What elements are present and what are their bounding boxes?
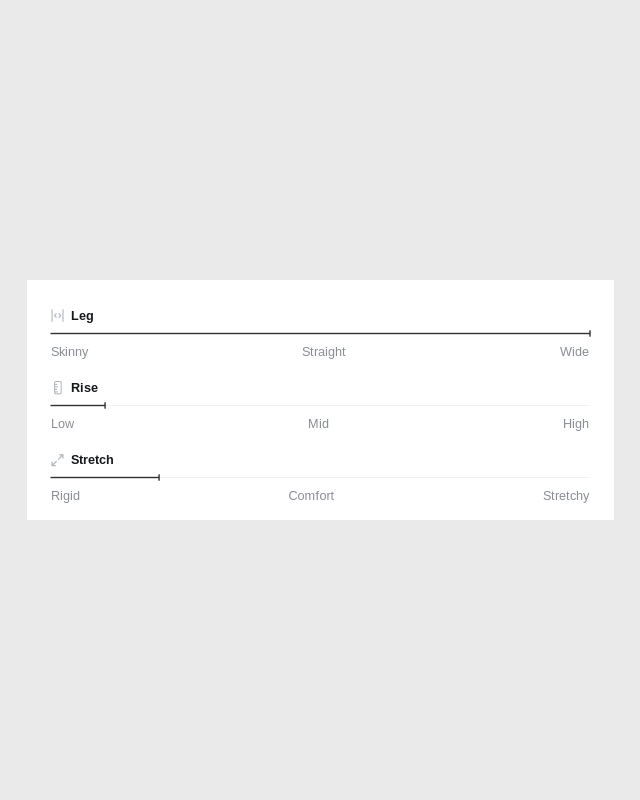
staticText: Stretchy [543, 488, 589, 503]
staticText: Leg [71, 308, 94, 323]
staticText: Low [51, 416, 74, 431]
staticText: Mid [308, 416, 329, 431]
staticText: Wide [560, 344, 589, 359]
staticText: Rise [71, 380, 98, 395]
staticText: Rigid [51, 488, 80, 503]
button[interactable]: Rise [50, 378, 590, 430]
staticText: Skinny [51, 344, 88, 359]
button[interactable]: Stretch [50, 450, 590, 502]
staticText: Stretch [71, 452, 114, 467]
button[interactable]: Leg [50, 306, 590, 358]
staticText: Comfort [288, 488, 334, 503]
staticText: Straight [302, 344, 346, 359]
staticText: High [563, 416, 589, 431]
